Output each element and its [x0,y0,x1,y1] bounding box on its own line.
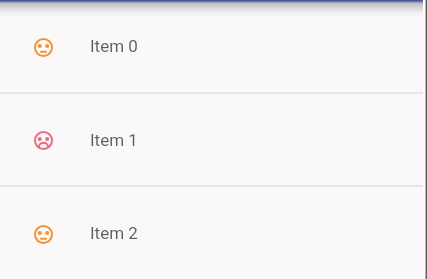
button[interactable]: Item 0 [0,0,427,92]
button[interactable]: Item 2 [0,187,427,279]
staticText: Item 0 [90,36,138,56]
button[interactable]: Item 1 [0,94,427,185]
staticText: Item 2 [90,223,138,243]
staticText: Item 1 [90,130,138,150]
